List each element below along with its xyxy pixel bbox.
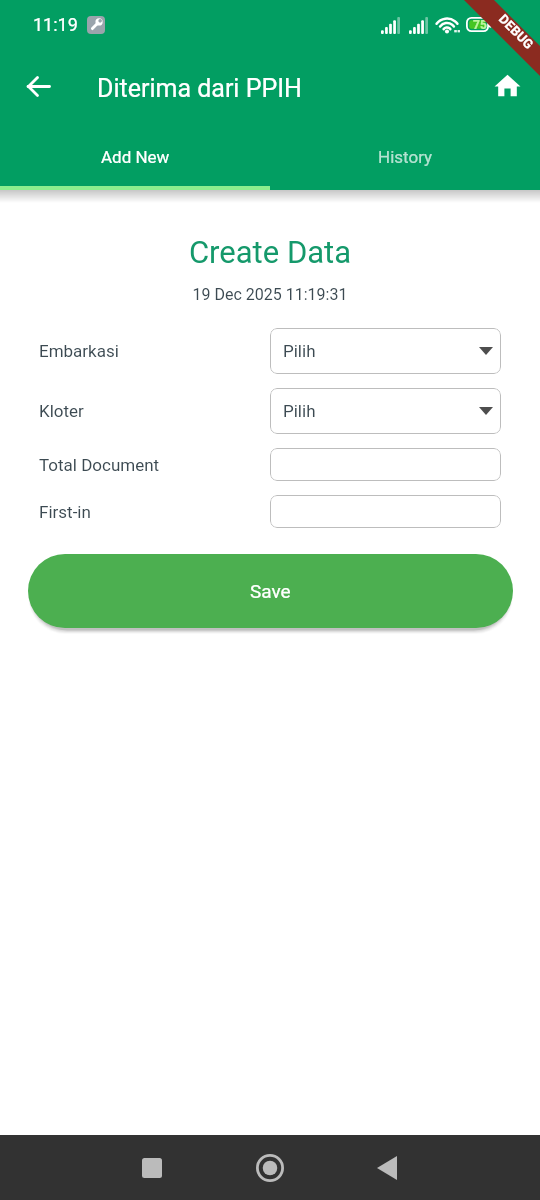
button[interactable]: Pilih (270, 328, 501, 374)
button[interactable] (270, 448, 501, 481)
staticText: Total Document (39, 455, 270, 475)
staticText: 19 Dec 2025 11:19:31 (0, 285, 540, 304)
button[interactable]: Home (246, 1144, 294, 1192)
staticText: Pilih (283, 401, 316, 421)
button[interactable]: History (270, 0, 540, 186)
staticText: 75 (473, 18, 487, 32)
staticText: 11:19 (33, 14, 78, 35)
button[interactable]: Add New (0, 0, 270, 186)
staticText: Create Data (0, 234, 540, 270)
staticText: DEBUG (496, 11, 537, 52)
button[interactable]: Save (28, 554, 513, 628)
button[interactable] (270, 495, 501, 528)
button[interactable]: Home (483, 61, 531, 109)
staticText: First-in (39, 502, 270, 522)
staticText: Pilih (283, 341, 316, 361)
staticText: Kloter (39, 401, 270, 421)
staticText: Save (250, 580, 291, 602)
staticText: Embarkasi (39, 341, 270, 361)
button[interactable]: Back (363, 1144, 411, 1192)
staticText: Add New (101, 147, 170, 167)
button[interactable]: Back (14, 62, 62, 110)
button[interactable]: Pilih (270, 388, 501, 434)
button[interactable]: Recents (128, 1144, 176, 1192)
staticText: Diterima dari PPIH (97, 74, 302, 103)
staticText: History (378, 147, 433, 167)
